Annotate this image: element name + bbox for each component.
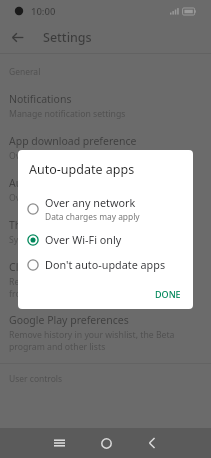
button[interactable]: DONE bbox=[150, 285, 186, 303]
button[interactable]: Over any network bbox=[18, 190, 193, 227]
staticText: General bbox=[9, 66, 41, 78]
staticText: Clear local search history bbox=[9, 260, 132, 274]
button[interactable]: Google Play preferences bbox=[0, 313, 211, 352]
staticText: App download preference bbox=[9, 134, 137, 148]
staticText: Data charges may apply bbox=[45, 211, 140, 222]
staticText: User controls bbox=[9, 373, 63, 385]
staticText: Google Play preferences bbox=[9, 313, 129, 327]
staticText: Remove history in your wishlist, the Bet… bbox=[9, 329, 202, 352]
button[interactable]: Back bbox=[6, 26, 29, 49]
staticText: Over Wi-Fi only bbox=[45, 232, 122, 247]
button[interactable]: Clear local search history bbox=[0, 260, 211, 299]
button[interactable]: App download preference bbox=[0, 134, 211, 162]
staticText: Over any network bbox=[45, 195, 136, 210]
staticText: Manage notification settings bbox=[9, 108, 202, 120]
button[interactable]: Theme bbox=[0, 218, 211, 246]
staticText: Over Wi-Fi only bbox=[9, 192, 202, 204]
staticText: 10:00 bbox=[31, 5, 56, 18]
button[interactable]: Home bbox=[94, 431, 118, 455]
staticText: Remove searches that you have performed … bbox=[9, 276, 202, 299]
button[interactable]: Don't auto-update apps bbox=[18, 252, 193, 277]
staticText: Auto-update apps bbox=[29, 161, 135, 178]
staticText: Theme bbox=[9, 218, 43, 232]
staticText: Don't auto-update apps bbox=[45, 257, 166, 272]
staticText: Settings bbox=[43, 29, 92, 46]
button[interactable]: Back bbox=[140, 431, 164, 455]
button[interactable]: Notifications bbox=[0, 92, 211, 120]
staticText: DONE bbox=[155, 288, 181, 300]
button[interactable]: Over Wi-Fi only bbox=[18, 227, 193, 252]
staticText: Auto-update apps bbox=[9, 176, 98, 190]
staticText: Notifications bbox=[9, 92, 72, 106]
staticText: Over any network bbox=[9, 150, 202, 162]
staticText: System default bbox=[9, 234, 202, 246]
button[interactable]: Recents bbox=[47, 431, 71, 455]
button[interactable]: Auto-update apps bbox=[0, 176, 211, 204]
